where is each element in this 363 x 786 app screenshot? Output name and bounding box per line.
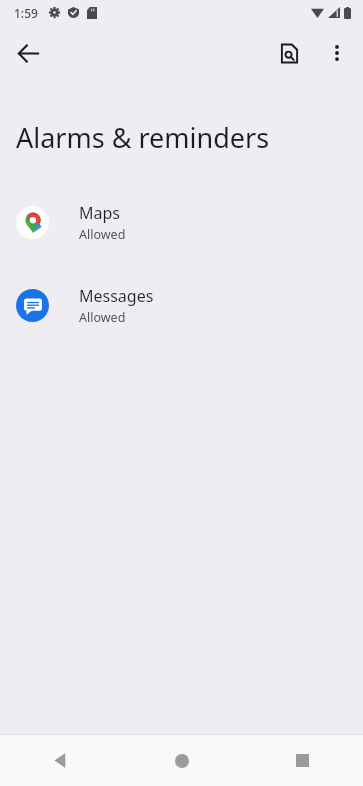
button[interactable]: More options: [313, 29, 361, 77]
button[interactable]: Back: [4, 29, 52, 77]
button[interactable]: Recent apps: [242, 735, 363, 786]
staticText: Allowed: [79, 226, 126, 243]
staticText: Allowed: [79, 309, 126, 326]
button[interactable]: Back: [0, 735, 121, 786]
button[interactable]: Messages: [0, 279, 363, 332]
staticText: Maps: [79, 202, 120, 224]
button[interactable]: Home: [121, 735, 242, 786]
button[interactable]: Maps: [0, 196, 363, 249]
button[interactable]: Search settings: [265, 29, 313, 77]
staticText: Messages: [79, 285, 154, 307]
staticText: 1:59: [14, 5, 38, 21]
staticText: Alarms & reminders: [16, 119, 270, 156]
